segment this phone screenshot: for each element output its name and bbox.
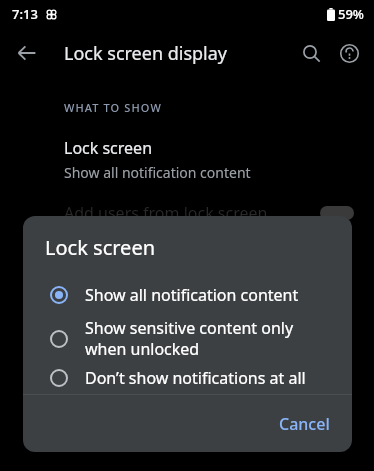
staticText: Lock screen display <box>64 41 228 66</box>
button[interactable]: Show sensitive content only when unlocke… <box>23 315 352 362</box>
button[interactable]: Search <box>292 34 330 72</box>
button[interactable]: Show all notification content <box>23 275 352 315</box>
staticText: WHAT TO SHOW <box>64 100 162 115</box>
staticText: Lock screen <box>45 234 156 261</box>
button[interactable]: Lock screen <box>0 137 374 182</box>
staticText: 59% <box>338 5 364 23</box>
staticText: Add users from lock screen <box>64 202 320 224</box>
staticText: Lock screen <box>64 137 153 159</box>
button[interactable]: Back <box>8 34 46 72</box>
button[interactable]: Don’t show notifications at all <box>23 362 352 394</box>
staticText: Show all notification content <box>85 284 338 306</box>
button[interactable]: Help <box>330 34 368 72</box>
button[interactable]: Cancel <box>267 405 342 443</box>
button[interactable]: Add users from lock screen <box>0 202 374 224</box>
staticText: 7:13 <box>12 5 38 23</box>
staticText: Don’t show notifications at all <box>85 367 338 389</box>
staticText: Cancel <box>279 413 330 435</box>
staticText: Show sensitive content only when unlocke… <box>85 317 338 360</box>
staticText: Show all notification content <box>64 163 251 182</box>
